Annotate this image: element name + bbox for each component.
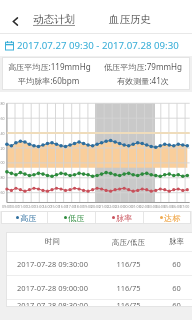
button[interactable]: 2017.07.27 09:30 - 2017.07.28 09:30 <box>5 34 192 56</box>
staticText: 高压平均压:119mmHg <box>8 61 91 72</box>
staticText: 2017-07-28 09:30:00 <box>17 259 88 269</box>
staticText: 高压 <box>20 213 37 223</box>
staticText: 达标 <box>164 213 181 223</box>
button[interactable]: 2017-07-28 09:00:00 <box>6 276 192 299</box>
staticText: 低压 <box>68 213 85 223</box>
staticText: 有效测量:41次 <box>117 75 169 86</box>
staticText: 60 <box>172 259 181 269</box>
button[interactable]: 动态计划 <box>28 10 80 28</box>
button[interactable]: 2017-07-28 08:30:00 <box>6 300 192 307</box>
button[interactable]: Back <box>8 14 22 28</box>
staticText: 动态计划 <box>33 13 75 26</box>
staticText: 低压平均压:79mmHg <box>104 61 183 72</box>
staticText: 60 <box>172 283 181 293</box>
staticText: 2017-07-28 08:30:00 <box>17 300 88 307</box>
staticText: 60 <box>172 300 181 307</box>
staticText: 2017.07.27 09:30 - 2017.07.28 09:30 <box>17 39 179 52</box>
staticText: 116/75 <box>116 300 141 307</box>
staticText: 116/75 <box>116 259 141 269</box>
staticText: 平均脉率:60bpm <box>18 75 80 86</box>
staticText: 脉率 <box>116 213 133 223</box>
button[interactable]: 脉率 <box>96 211 143 224</box>
button[interactable]: 2017-07-28 09:30:00 <box>6 252 192 275</box>
staticText: 高压/低压 <box>112 237 145 247</box>
staticText: 血压历史 <box>109 13 151 26</box>
staticText: 脉率 <box>169 237 184 246</box>
button[interactable]: 达标 <box>144 211 191 224</box>
button[interactable]: 血压历史 <box>104 10 156 28</box>
staticText: 时间 <box>45 237 60 246</box>
button[interactable]: 低压 <box>48 211 95 224</box>
button[interactable]: 高压 <box>1 211 47 224</box>
staticText: 2017-07-28 09:00:00 <box>17 283 88 293</box>
staticText: 116/75 <box>116 283 141 293</box>
